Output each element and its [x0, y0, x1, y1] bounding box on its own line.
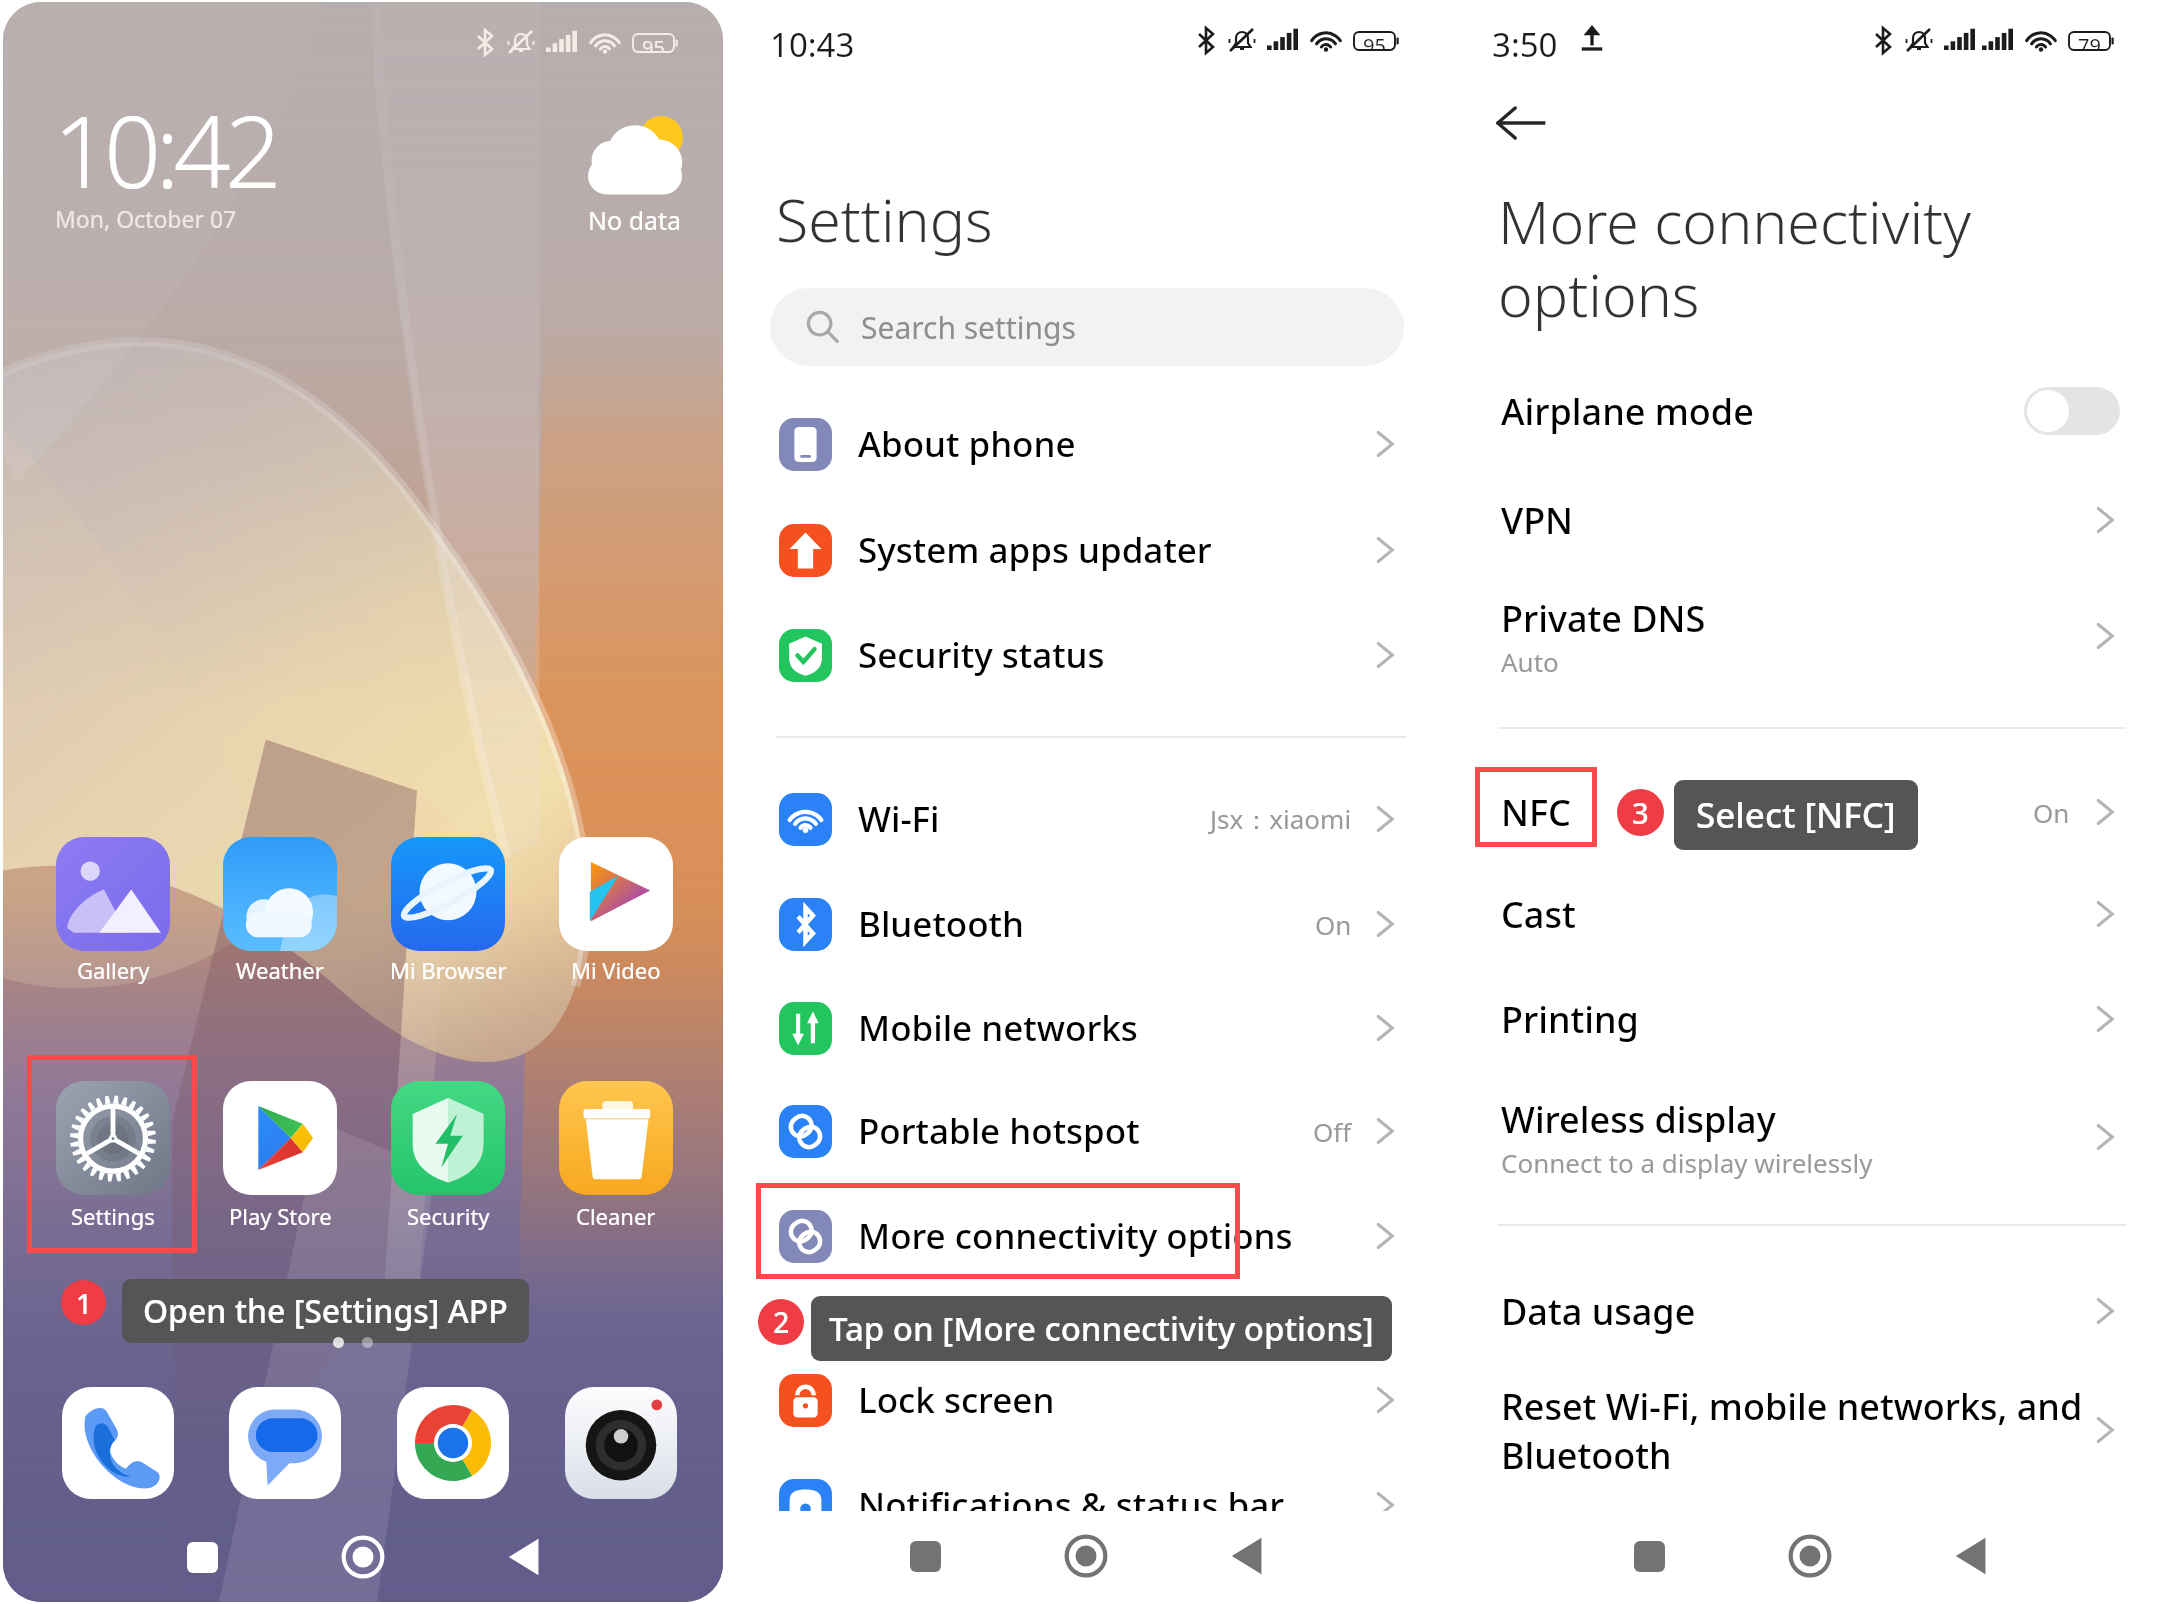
button[interactable]: Security: [368, 1073, 528, 1233]
staticText: 3:50: [1492, 22, 1558, 67]
staticText: VPN: [1501, 496, 1574, 545]
staticText: Cast: [1501, 890, 1576, 939]
staticText: 95: [642, 34, 665, 52]
button[interactable]: Recents: [1617, 1524, 1681, 1588]
staticText: Private DNS: [1501, 594, 1706, 643]
staticText: Settings: [71, 1201, 155, 1231]
staticText: Lock screen: [858, 1376, 1055, 1424]
staticText: No data: [588, 203, 682, 237]
button[interactable]: About phone: [730, 392, 1452, 496]
staticText: Settings: [776, 179, 993, 259]
staticText: Auto: [1501, 644, 1559, 679]
staticText: More connectivity options: [858, 1212, 1293, 1260]
button[interactable]: Recents: [893, 1524, 957, 1588]
staticText: Tap on [More connectivity options]: [829, 1306, 1374, 1351]
button[interactable]: Home: [1054, 1524, 1118, 1588]
staticText: 3: [1632, 793, 1649, 833]
button[interactable]: Printing: [1452, 967, 2172, 1071]
staticText: On: [1315, 907, 1352, 942]
staticText: Mi Browser: [390, 955, 507, 985]
button[interactable]: Bluetooth: [730, 872, 1452, 976]
button[interactable]: VPN: [1452, 468, 2172, 572]
staticText: 95: [1363, 32, 1386, 50]
staticText: Open the [Settings] APP: [143, 1289, 508, 1333]
staticText: Cleaner: [576, 1201, 656, 1231]
staticText: Mon, October 07: [55, 203, 237, 234]
staticText: 79: [2078, 32, 2101, 50]
button[interactable]: Phone: [62, 1387, 174, 1499]
button[interactable]: Messages: [229, 1387, 341, 1499]
button[interactable]: Mobile networks: [730, 976, 1452, 1080]
button[interactable]: Back: [1939, 1524, 2003, 1588]
staticText: Play Store: [229, 1201, 332, 1231]
button[interactable]: Private DNS: [1452, 584, 2172, 688]
button[interactable]: Gallery: [33, 829, 193, 987]
staticText: 2: [773, 1303, 790, 1342]
button[interactable]: Notifications & status bar: [730, 1453, 1452, 1511]
button[interactable]: System apps updater: [730, 498, 1452, 602]
staticText: 10:42: [53, 81, 276, 217]
button[interactable]: Security status: [730, 603, 1452, 707]
staticText: Search settings: [861, 307, 1076, 348]
staticText: Wi-Fi: [858, 795, 940, 843]
button[interactable]: Back: [1490, 92, 1552, 154]
staticText: Jsx：xiaomi: [1210, 801, 1352, 837]
staticText: About phone: [858, 420, 1076, 468]
staticText: Data usage: [1501, 1287, 1696, 1336]
staticText: Airplane mode: [1501, 387, 1754, 436]
button[interactable]: Home: [331, 1525, 395, 1589]
staticText: Mi Video: [571, 955, 661, 985]
staticText: System apps updater: [858, 526, 1212, 574]
button[interactable]: Camera: [565, 1387, 677, 1499]
staticText: Off: [1313, 1114, 1352, 1149]
button[interactable]: Reset Wi-Fi, mobile networks, and Blueto…: [1452, 1378, 2172, 1482]
staticText: Portable hotspot: [858, 1107, 1140, 1155]
button[interactable]: Wi-Fi: [730, 767, 1452, 871]
staticText: Notifications & status bar: [858, 1481, 1285, 1511]
button[interactable]: Airplane mode: [1452, 359, 2172, 463]
staticText: Gallery: [77, 955, 150, 985]
staticText: Reset Wi-Fi, mobile networks, and Blueto…: [1501, 1382, 2083, 1479]
button[interactable]: Settings: [33, 1073, 193, 1233]
staticText: Wireless display: [1501, 1095, 1776, 1144]
button[interactable]: Data usage: [1452, 1259, 2172, 1363]
button[interactable]: Chrome: [397, 1387, 509, 1499]
button[interactable]: Airplane mode toggle: [2024, 387, 2120, 435]
staticText: Security status: [858, 631, 1105, 679]
button[interactable]: Wireless display: [1452, 1085, 2172, 1189]
staticText: 10:43: [770, 22, 855, 67]
button[interactable]: Mi Browser: [368, 829, 528, 987]
staticText: Bluetooth: [858, 900, 1024, 948]
staticText: Mobile networks: [858, 1004, 1138, 1052]
button[interactable]: Play Store: [200, 1073, 360, 1233]
button[interactable]: Portable hotspot: [730, 1079, 1452, 1183]
staticText: Weather: [236, 955, 324, 985]
button[interactable]: Lock screen: [730, 1348, 1452, 1452]
button[interactable]: Cleaner: [536, 1073, 696, 1233]
button[interactable]: NFC: [1452, 760, 2172, 864]
staticText: Select [NFC]: [1696, 791, 1896, 839]
staticText: Printing: [1501, 995, 1639, 1044]
button[interactable]: Weather: [200, 829, 360, 987]
staticText: Security: [407, 1201, 490, 1231]
button[interactable]: Search settings: [770, 288, 1404, 366]
staticText: NFC: [1501, 788, 1571, 837]
staticText: More connectivity options: [1498, 181, 1971, 335]
button[interactable]: Back: [1215, 1524, 1279, 1588]
button[interactable]: Mi Video: [536, 829, 696, 987]
staticText: Connect to a display wirelessly: [1501, 1145, 1873, 1180]
button[interactable]: More connectivity options: [730, 1184, 1452, 1288]
button[interactable]: Recents: [170, 1525, 234, 1589]
staticText: On: [2033, 795, 2070, 830]
staticText: 1: [76, 1284, 92, 1322]
button[interactable]: Home: [1778, 1524, 1842, 1588]
button[interactable]: Back: [492, 1525, 556, 1589]
button[interactable]: Cast: [1452, 862, 2172, 966]
